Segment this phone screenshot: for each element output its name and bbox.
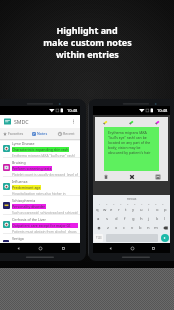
staticText: Favorites	[8, 131, 24, 136]
button[interactable]: ?123	[94, 234, 103, 242]
button[interactable]: More options	[69, 117, 78, 126]
staticText: y	[132, 207, 135, 213]
button[interactable]: h	[137, 214, 145, 223]
button[interactable]: Close	[128, 173, 135, 180]
staticText: i	[148, 207, 150, 213]
button[interactable]: v	[128, 223, 136, 233]
button[interactable]: t	[122, 205, 129, 214]
staticText: Personality disorder	[12, 204, 46, 209]
staticText: n	[147, 225, 150, 231]
staticText: s	[106, 216, 109, 222]
staticText: e	[110, 207, 113, 213]
staticText: h	[140, 216, 143, 222]
button[interactable]: b	[136, 223, 144, 233]
staticText: Outpatient care except for major GI blee…	[12, 223, 78, 228]
staticText: t	[125, 207, 127, 213]
button[interactable]: Enter	[161, 234, 169, 242]
button[interactable]: Schizophrenia	[0, 196, 80, 215]
staticText: Recent	[63, 131, 75, 136]
staticText: Influenza	[12, 179, 28, 184]
staticText: ?123	[96, 236, 102, 240]
button[interactable]: Home	[35, 243, 45, 253]
staticText: within entries	[56, 48, 119, 60]
button[interactable]: Recent	[53, 128, 80, 139]
button[interactable]: z	[104, 223, 112, 233]
button[interactable]: r	[115, 205, 122, 214]
button[interactable]: Bruising	[0, 158, 80, 177]
staticText: Hospitalization rates also higher in inf…	[12, 191, 78, 195]
staticText: Highlight and	[56, 24, 118, 36]
button[interactable]: y	[129, 205, 137, 214]
staticText: f	[124, 216, 126, 222]
staticText: 10:48	[67, 108, 78, 113]
button[interactable]: p	[161, 205, 169, 214]
button[interactable]: n	[144, 223, 152, 233]
button[interactable]: f	[121, 214, 129, 223]
button[interactable]: g	[129, 214, 137, 223]
staticText: SMDC	[14, 118, 29, 125]
button[interactable]: m	[152, 223, 160, 233]
staticText: 2	[106, 202, 108, 205]
button[interactable]: Shift	[93, 223, 104, 233]
button[interactable]: u	[137, 205, 145, 214]
staticText: Perform screening tests	[12, 166, 52, 171]
button[interactable]: e	[108, 205, 115, 214]
button[interactable]: Delete	[102, 173, 109, 180]
staticText: v	[131, 225, 134, 231]
button[interactable]: Lyme Disease	[0, 139, 80, 158]
button[interactable]: Back	[105, 243, 115, 253]
button[interactable]: d	[112, 214, 121, 223]
staticText: Bruising	[12, 160, 26, 165]
button[interactable]: Highlighter	[128, 119, 135, 126]
staticText: 7	[141, 202, 143, 205]
staticText: Notes	[37, 131, 48, 136]
staticText: 4	[120, 202, 122, 205]
staticText: 9	[155, 202, 157, 205]
button[interactable]: i	[145, 205, 153, 214]
button[interactable]: Notes	[26, 128, 53, 139]
button[interactable]: w	[101, 205, 108, 214]
button[interactable]: Cirrhosis of the Liver	[0, 215, 80, 234]
staticText: 8	[148, 202, 150, 205]
staticText: make custom notes	[43, 36, 132, 48]
staticText: Erythema migrans (AKA "bull's eye" rash)…	[108, 130, 155, 155]
staticText: Vertigo	[12, 236, 24, 241]
button[interactable]: Highlighter	[154, 119, 161, 126]
button[interactable]: Save	[154, 173, 161, 180]
button[interactable]: o	[153, 205, 161, 214]
staticText: u	[140, 207, 143, 213]
button[interactable]: Highlighter	[102, 119, 109, 126]
button[interactable]: s	[103, 214, 112, 223]
staticText: 10:48	[157, 108, 168, 113]
staticText: g	[132, 216, 135, 222]
button[interactable]: Back	[13, 243, 23, 253]
button[interactable]: Backspace	[160, 223, 170, 233]
staticText: Predominant age	[12, 185, 41, 190]
button[interactable]: k	[153, 214, 161, 223]
button[interactable]: x	[112, 223, 120, 233]
staticText: Schizophrenia	[12, 198, 36, 203]
staticText: 6	[134, 202, 136, 205]
staticText: j	[148, 216, 150, 222]
staticText: Characteristic expanding skin rash	[12, 147, 69, 152]
staticText: m	[154, 225, 158, 231]
button[interactable]: Recents	[58, 243, 68, 253]
button[interactable]: c	[120, 223, 128, 233]
staticText: x	[115, 225, 118, 231]
button[interactable]: q	[94, 205, 101, 214]
button[interactable]: Vertigo	[0, 234, 80, 243]
staticText: Erythema migrans (AKA "bull's eye" rash)…	[12, 153, 78, 157]
staticText: z	[107, 225, 109, 231]
staticText: Such as paranoid, schizotypal and schizo…	[12, 210, 78, 214]
button[interactable]: Recents	[148, 243, 158, 253]
button[interactable]: Home	[127, 243, 137, 253]
button[interactable]: Favorites	[0, 128, 26, 139]
button[interactable]: Influenza	[0, 177, 80, 196]
staticText: d	[115, 216, 118, 222]
button[interactable]: l	[161, 214, 169, 223]
button[interactable]: j	[145, 214, 153, 223]
button[interactable]: a	[94, 214, 103, 223]
staticText: k	[156, 216, 159, 222]
staticText: a	[97, 216, 100, 222]
